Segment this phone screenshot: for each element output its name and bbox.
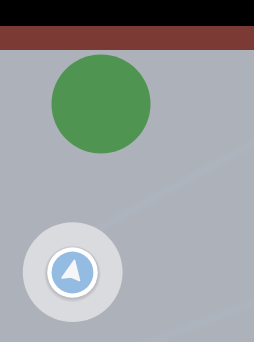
button[interactable]: Your location <box>43 243 102 302</box>
